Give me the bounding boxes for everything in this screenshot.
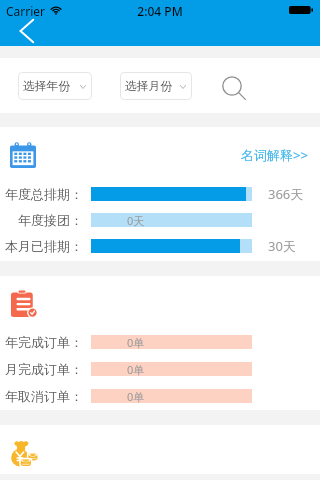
button[interactable]: 选择月份 (120, 72, 192, 100)
staticText: 年度接团： (18, 212, 83, 228)
button[interactable]: 名词解释>> (239, 144, 310, 166)
staticText: 选择年份 (23, 79, 71, 94)
staticText: 年完成订单： (5, 334, 83, 350)
staticText: 名词解释>> (241, 146, 308, 164)
button[interactable]: 选择年份 (18, 72, 92, 100)
staticText: 月完成订单： (5, 361, 83, 377)
button[interactable]: Search (218, 72, 246, 100)
staticText: 0天 (127, 213, 145, 227)
staticText: 选择月份 (125, 79, 173, 94)
staticText: 本月已排期： (5, 238, 83, 254)
staticText: 年度总排期： (5, 186, 83, 202)
staticText: 0单 (127, 389, 145, 403)
staticText: 0单 (127, 335, 145, 349)
staticText: 年取消订单： (5, 388, 83, 404)
staticText: 366天 (268, 185, 304, 203)
staticText: 0单 (127, 362, 145, 376)
staticText: 2:04 PM (0, 3, 320, 19)
staticText: 30天 (268, 237, 296, 255)
button[interactable]: Back (8, 18, 44, 44)
staticText: Carrier (6, 3, 46, 19)
